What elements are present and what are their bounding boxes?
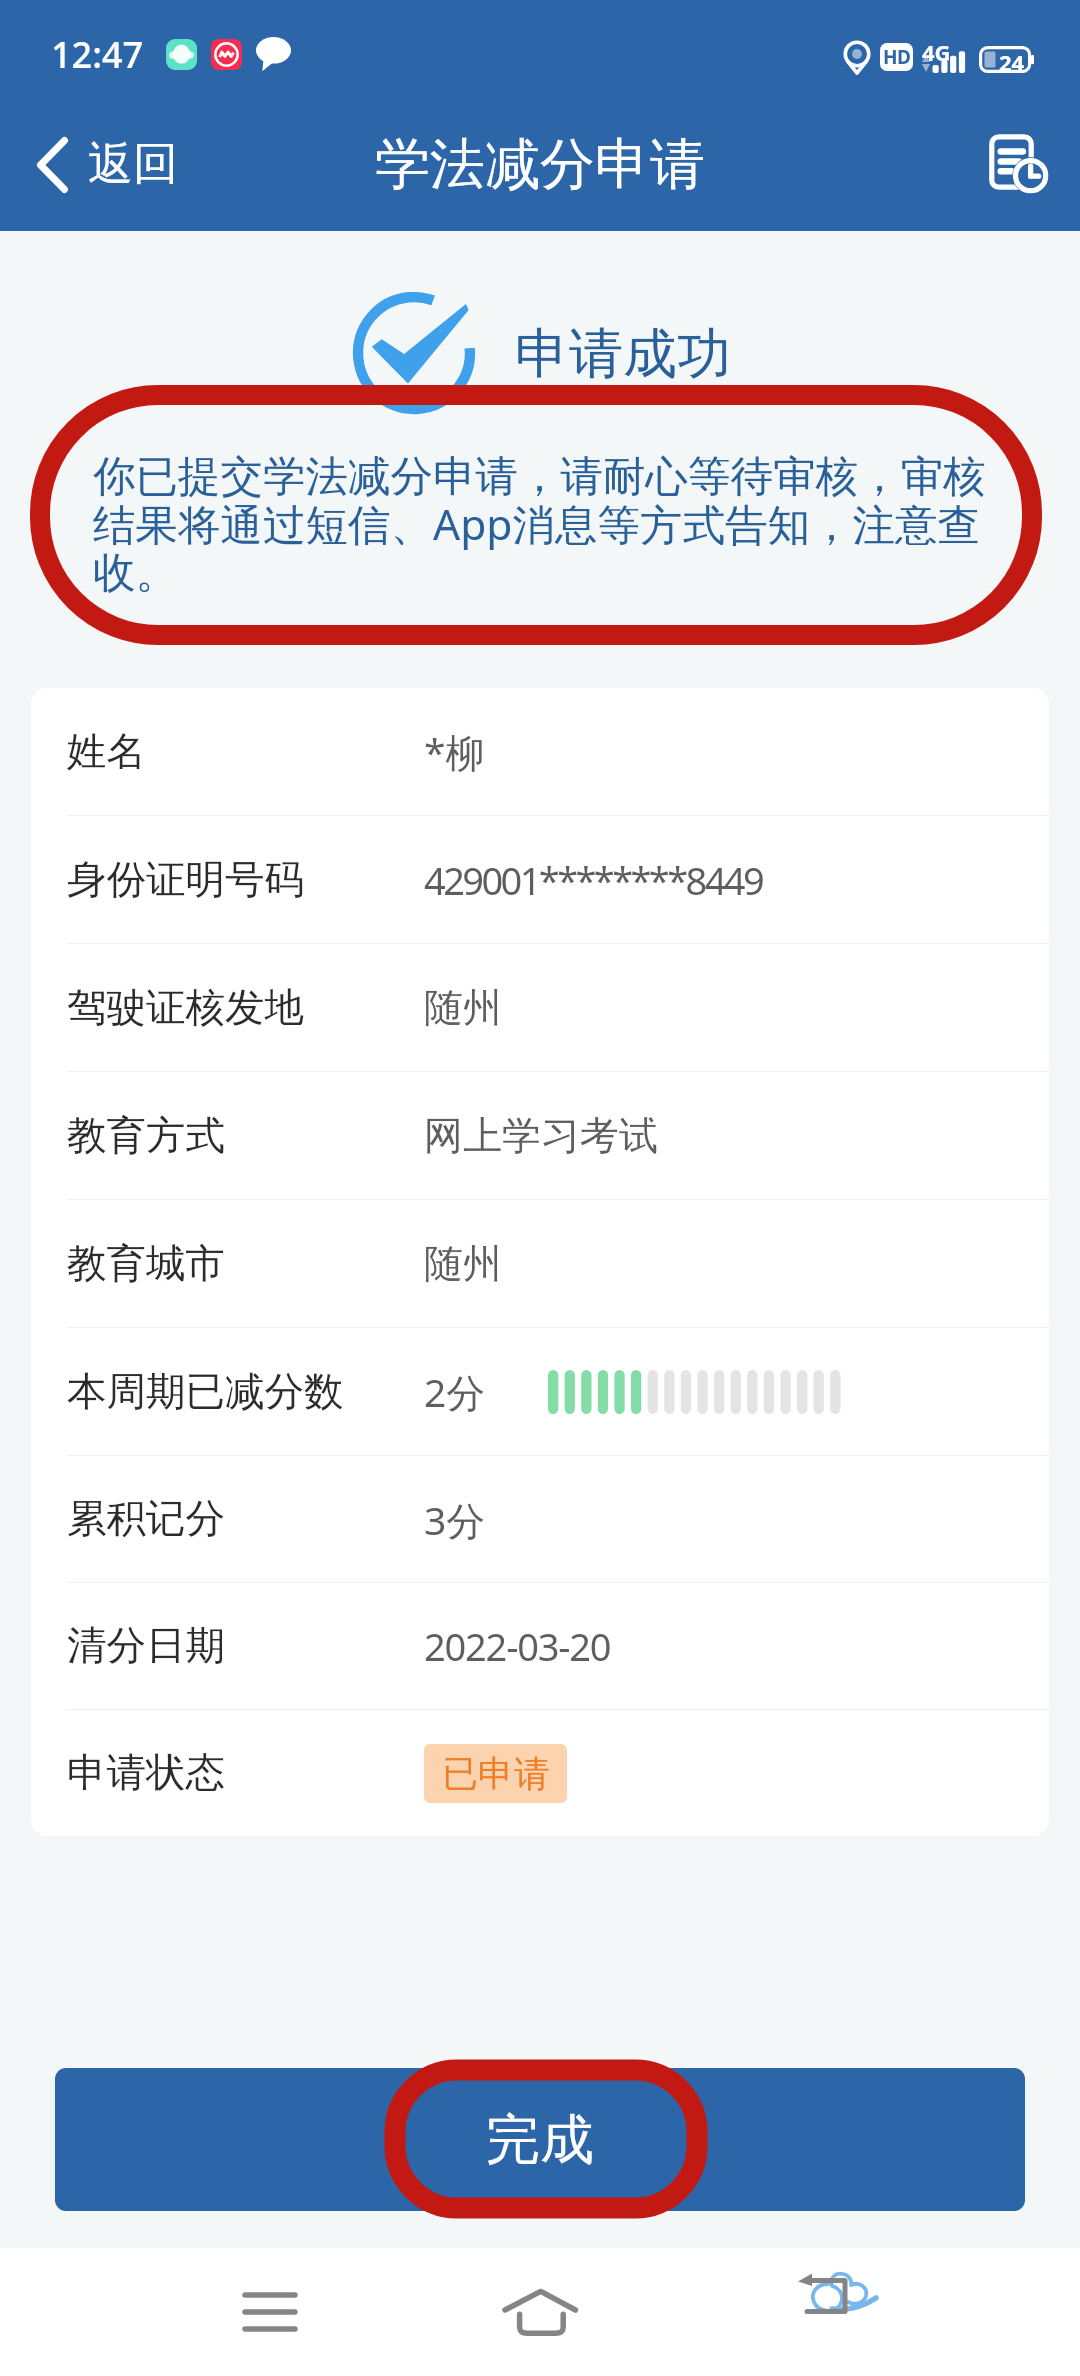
staticText: 申请成功: [515, 320, 731, 388]
staticText: 429001********8449: [424, 854, 763, 906]
staticText: 教育方式: [67, 1111, 225, 1161]
button[interactable]: 清分日期: [31, 1583, 1049, 1709]
button[interactable]: 累积记分: [31, 1456, 1049, 1582]
staticText: 姓名: [67, 727, 146, 777]
button[interactable]: 驾驶证核发地: [31, 944, 1049, 1071]
staticText: 本周期已减分数: [67, 1367, 344, 1417]
button[interactable]: 教育方式: [31, 1072, 1049, 1199]
staticText: 教育城市: [67, 1239, 225, 1289]
staticText: 随州: [424, 1239, 502, 1288]
staticText: 4G: [922, 37, 951, 67]
staticText: 驾驶证核发地: [67, 983, 304, 1033]
staticText: 2022-03-20: [424, 1620, 611, 1672]
button[interactable]: 申请状态: [31, 1710, 1049, 1836]
staticText: 已申请: [442, 1751, 550, 1796]
staticText: 3分: [424, 1493, 486, 1546]
staticText: *柳: [424, 725, 485, 778]
button[interactable]: 教育城市: [31, 1200, 1049, 1327]
button[interactable]: 姓名: [31, 688, 1049, 815]
staticText: 学法减分申请: [375, 130, 705, 199]
staticText: 2分: [424, 1365, 486, 1418]
button[interactable]: Recent apps: [220, 2270, 320, 2354]
button[interactable]: Back: [790, 2272, 920, 2342]
staticText: 随州: [424, 983, 502, 1032]
staticText: 累积记分: [67, 1494, 225, 1544]
button[interactable]: 本周期已减分数: [31, 1328, 1049, 1455]
button[interactable]: 完成: [55, 2068, 1025, 2211]
staticText: 身份证明号码: [67, 855, 304, 905]
staticText: 你已提交学法减分申请，请耐心等待审核，审核结果将通过短信、App消息等方式告知，…: [93, 450, 1022, 600]
button[interactable]: 返回: [0, 124, 200, 205]
staticText: 清分日期: [67, 1621, 225, 1671]
staticText: 网上学习考试: [424, 1111, 658, 1160]
button[interactable]: Application records: [974, 119, 1060, 205]
staticText: 返回: [88, 136, 178, 193]
staticText: 申请状态: [67, 1748, 225, 1798]
staticText: 12:47: [51, 30, 144, 79]
staticText: 24: [999, 47, 1025, 77]
button[interactable]: 身份证明号码: [31, 816, 1049, 943]
staticText: HD: [883, 44, 911, 70]
button[interactable]: Home: [492, 2270, 592, 2354]
staticText: 完成: [486, 2106, 594, 2174]
